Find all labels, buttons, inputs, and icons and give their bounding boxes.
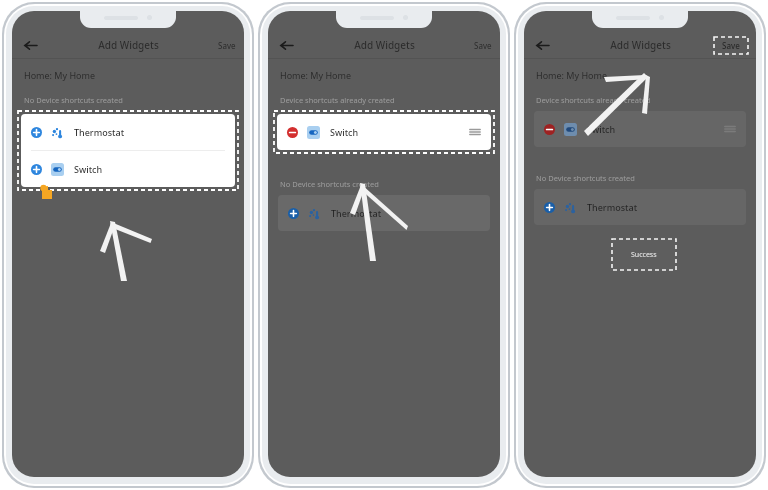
staticText: Device shortcuts already created [280, 95, 395, 105]
button[interactable]: Reorder [469, 126, 481, 138]
button[interactable]: Save [474, 40, 492, 51]
staticText: Add Widgets [98, 38, 159, 52]
button[interactable]: Reorder [724, 123, 736, 135]
button[interactable]: Remove [287, 127, 298, 138]
staticText: Switch [74, 163, 103, 175]
staticText: Switch [587, 123, 616, 135]
button[interactable]: Add [21, 151, 235, 187]
staticText: Add Widgets [610, 38, 671, 52]
button[interactable]: Add [534, 189, 746, 225]
button[interactable]: Add [278, 195, 490, 231]
staticText: Thermostat [587, 201, 638, 213]
button[interactable]: Add [288, 208, 299, 219]
button[interactable]: Save [714, 37, 748, 54]
staticText: Home: My Home [24, 69, 96, 81]
button[interactable]: Add [31, 164, 42, 175]
button[interactable]: Back [274, 33, 298, 57]
staticText: Home: My Home [536, 69, 608, 81]
staticText: Device shortcuts already created [536, 95, 651, 105]
staticText: Thermostat [331, 207, 382, 219]
staticText: Save [722, 40, 740, 51]
staticText: Switch [330, 126, 359, 138]
button[interactable]: Add [544, 202, 555, 213]
button[interactable]: Remove [544, 124, 555, 135]
button[interactable]: Back [18, 33, 42, 57]
staticText: Success [631, 250, 657, 260]
staticText: Add Widgets [354, 38, 415, 52]
staticText: No Device shortcuts created [536, 173, 635, 183]
staticText: No Device shortcuts created [280, 179, 379, 189]
staticText: No Device shortcuts created [24, 95, 123, 105]
staticText: Home: My Home [280, 69, 352, 81]
button[interactable]: Add [21, 114, 235, 150]
button[interactable]: Add [31, 127, 42, 138]
staticText: Thermostat [74, 126, 125, 138]
button[interactable]: Remove [277, 114, 491, 150]
button[interactable]: Remove [534, 111, 746, 147]
button[interactable]: Save [218, 40, 236, 51]
button[interactable]: Back [530, 33, 554, 57]
